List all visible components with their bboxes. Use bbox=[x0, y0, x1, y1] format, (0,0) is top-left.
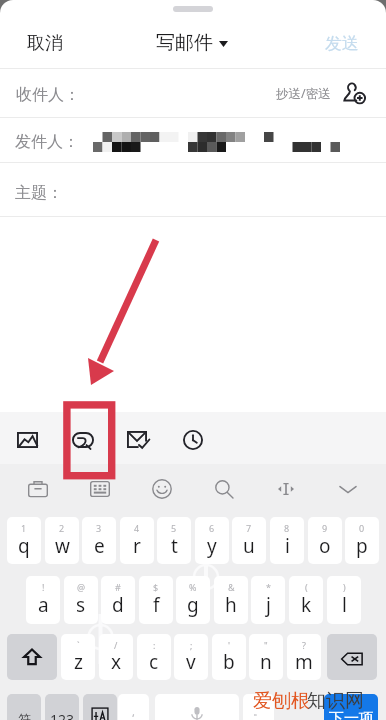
staticText: , bbox=[132, 704, 135, 719]
staticText: 4 bbox=[134, 522, 140, 534]
staticText: 1 bbox=[21, 522, 27, 534]
staticText: a bbox=[38, 592, 49, 618]
staticText: ; bbox=[190, 639, 193, 651]
button[interactable]: % bbox=[176, 576, 210, 624]
staticText: d bbox=[112, 592, 124, 618]
button[interactable]: " bbox=[249, 634, 283, 680]
button[interactable]: 2 bbox=[45, 517, 79, 564]
button[interactable]: Shift bbox=[7, 634, 57, 680]
staticText: y bbox=[207, 533, 217, 559]
button[interactable]: 发件人： bbox=[0, 117, 386, 162]
button[interactable]: Backspace bbox=[327, 634, 377, 680]
button[interactable]: 收件人： bbox=[0, 68, 386, 117]
button[interactable]: Insert image bbox=[9, 423, 46, 457]
staticText: 下一项 bbox=[329, 709, 374, 720]
button[interactable]: 9 bbox=[308, 517, 342, 564]
button[interactable]: 8 bbox=[270, 517, 304, 564]
staticText: ) bbox=[343, 581, 346, 593]
button[interactable]: 5 bbox=[157, 517, 191, 564]
button[interactable]: Keyboard layouts bbox=[83, 472, 117, 506]
staticText: i bbox=[285, 533, 290, 559]
button[interactable]: ? bbox=[287, 634, 321, 680]
button[interactable]: , bbox=[118, 694, 149, 720]
button[interactable]: 符 bbox=[7, 694, 41, 720]
staticText: 主题： bbox=[15, 183, 63, 203]
staticText: : bbox=[153, 639, 156, 651]
staticText: 6 bbox=[209, 522, 215, 534]
button[interactable]: Space bbox=[155, 694, 239, 720]
staticText: 爱刨根 bbox=[253, 689, 310, 713]
staticText: s bbox=[76, 592, 86, 618]
button[interactable]: 4 bbox=[120, 517, 154, 564]
button[interactable]: ` bbox=[61, 634, 95, 680]
button[interactable]: 6 bbox=[195, 517, 229, 564]
button[interactable]: 抄送/密送 bbox=[270, 80, 336, 106]
button[interactable]: # bbox=[101, 576, 135, 624]
staticText: t bbox=[171, 533, 178, 559]
button[interactable]: 123 bbox=[45, 694, 79, 720]
button[interactable]: & bbox=[214, 576, 248, 624]
button[interactable]: 1 bbox=[7, 517, 41, 564]
staticText: ! bbox=[42, 581, 45, 593]
button[interactable]: @ bbox=[64, 576, 98, 624]
staticText: 知识网 bbox=[307, 689, 364, 713]
staticText: $ bbox=[153, 581, 159, 593]
staticText: p bbox=[356, 533, 368, 559]
staticText: 发送 bbox=[325, 33, 359, 54]
button[interactable]: Schedule send bbox=[175, 421, 211, 459]
staticText: & bbox=[228, 581, 235, 593]
button[interactable]: Clipboard bbox=[21, 472, 55, 506]
button[interactable]: Request read receipt bbox=[119, 422, 155, 457]
staticText: " bbox=[264, 639, 268, 651]
staticText: # bbox=[115, 581, 121, 593]
button[interactable]: 。 bbox=[243, 694, 274, 720]
staticText: 9 bbox=[322, 522, 328, 534]
button[interactable]: Hide keyboard bbox=[331, 472, 365, 506]
staticText: 8 bbox=[284, 522, 290, 534]
staticText: ( bbox=[305, 581, 308, 593]
button[interactable]: $ bbox=[139, 576, 173, 624]
button[interactable]: * bbox=[251, 576, 285, 624]
staticText: l bbox=[342, 592, 347, 618]
staticText: k bbox=[301, 592, 312, 618]
staticText: 符 bbox=[18, 711, 31, 720]
button[interactable]: Move cursor bbox=[269, 472, 303, 506]
button[interactable]: ( bbox=[289, 576, 323, 624]
button[interactable]: ' bbox=[212, 634, 246, 680]
button[interactable]: Attach link bbox=[64, 423, 102, 457]
button[interactable]: 3 bbox=[82, 517, 116, 564]
button[interactable]: ! bbox=[26, 576, 60, 624]
button[interactable]: Search bbox=[207, 472, 241, 506]
staticText: / bbox=[114, 639, 118, 651]
button[interactable]: Add recipient bbox=[341, 80, 367, 106]
staticText: q bbox=[18, 533, 30, 559]
button[interactable]: ) bbox=[327, 576, 361, 624]
button[interactable]: 写邮件 bbox=[150, 26, 234, 60]
staticText: z bbox=[74, 649, 83, 675]
staticText: j bbox=[266, 592, 271, 618]
staticText: b bbox=[223, 649, 235, 675]
staticText: 123 bbox=[50, 710, 75, 720]
button[interactable]: 发送 bbox=[314, 26, 370, 60]
staticText: f bbox=[153, 592, 160, 618]
staticText: 2 bbox=[59, 522, 65, 534]
button[interactable]: ; bbox=[174, 634, 208, 680]
button[interactable]: Switch language bbox=[83, 694, 117, 720]
button[interactable]: / bbox=[99, 634, 133, 680]
staticText: o bbox=[319, 533, 331, 559]
staticText: u bbox=[243, 533, 255, 559]
staticText: 7 bbox=[246, 522, 252, 534]
button[interactable]: 7 bbox=[232, 517, 266, 564]
button[interactable]: 取消 bbox=[16, 26, 74, 60]
staticText: % bbox=[189, 581, 197, 593]
button[interactable]: 下一项 bbox=[324, 694, 378, 720]
button[interactable]: Emoji bbox=[145, 472, 179, 506]
staticText: e bbox=[94, 533, 105, 559]
staticText: n bbox=[260, 649, 272, 675]
staticText: r bbox=[133, 533, 141, 559]
staticText: 发件人： bbox=[15, 132, 79, 152]
button[interactable]: 0 bbox=[345, 517, 379, 564]
button[interactable]: 主题： bbox=[0, 162, 386, 216]
staticText: ? bbox=[302, 639, 306, 651]
button[interactable]: : bbox=[137, 634, 171, 680]
